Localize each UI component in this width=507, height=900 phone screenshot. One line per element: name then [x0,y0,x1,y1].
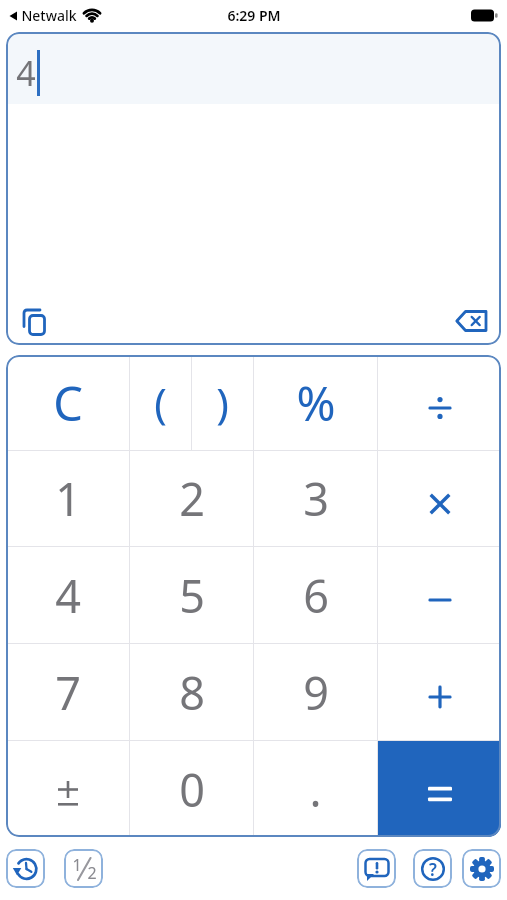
staticText: 0 [179,759,205,820]
button[interactable]: % [254,355,377,450]
button[interactable] [378,355,501,450]
button[interactable]: 1 [6,451,129,546]
staticText: 1 [72,854,82,876]
staticText: 2 [87,862,97,884]
button[interactable] [357,849,396,888]
button[interactable]: 6 [254,547,377,643]
button[interactable] [378,644,501,740]
button[interactable] [6,741,129,837]
staticText: 8 [179,662,205,723]
button[interactable]: ) [192,355,253,450]
staticText: ) [216,374,229,431]
staticText: 4 [55,565,81,626]
staticText: 3 [303,468,329,529]
button[interactable] [19,306,49,336]
button[interactable]: 7 [6,644,129,740]
staticText: 6 [303,565,329,626]
button[interactable]: ( [130,355,191,450]
button[interactable]: 4 [6,547,129,643]
button[interactable]: 9 [254,644,377,740]
staticText: C [53,371,83,435]
button[interactable] [6,849,45,888]
button[interactable]: 8 [130,644,253,740]
staticText: ? [429,858,437,881]
staticText: . [309,759,322,820]
button[interactable]: 1 [64,849,103,888]
staticText: 4 [16,50,36,96]
staticText: 7 [55,662,81,723]
staticText: % [296,371,336,435]
button[interactable] [454,306,488,336]
staticText: 6:29 PM [227,6,281,25]
button[interactable]: 3 [254,451,377,546]
staticText: Netwalk [21,6,77,25]
button[interactable] [378,547,501,643]
button[interactable]: ? [413,849,452,888]
button[interactable] [378,451,501,546]
button[interactable]: . [254,741,377,837]
button[interactable]: 5 [130,547,253,643]
staticText: 1 [55,468,81,529]
button[interactable]: 0 [130,741,253,837]
button[interactable] [378,741,501,837]
staticText: ( [154,374,167,431]
staticText: 2 [179,468,205,529]
staticText: 5 [179,565,205,626]
staticText: 9 [303,662,329,723]
button[interactable]: C [6,355,129,450]
button[interactable]: 2 [130,451,253,546]
button[interactable] [462,849,501,888]
